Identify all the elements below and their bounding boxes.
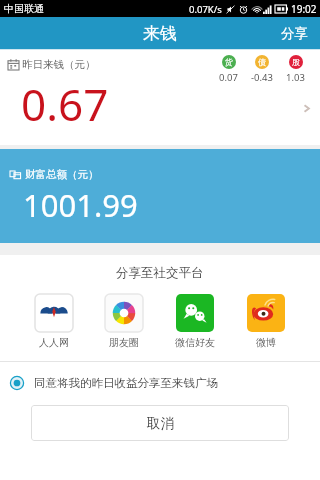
staticText: 19:02 bbox=[291, 2, 317, 16]
staticText: 0.07K/s bbox=[189, 3, 222, 16]
staticText: 股 bbox=[292, 57, 300, 67]
staticText: -0.43 bbox=[251, 71, 273, 84]
button[interactable]: 分享 bbox=[269, 18, 320, 49]
staticText: 1.03 bbox=[286, 71, 305, 84]
staticText: 来钱 bbox=[143, 23, 177, 44]
button[interactable]: 朋友圈 bbox=[102, 293, 146, 350]
staticText: 中国联通 bbox=[4, 2, 44, 15]
staticText: 分享 bbox=[281, 25, 308, 42]
staticText: 货 bbox=[225, 57, 233, 67]
staticText: 微博 bbox=[256, 336, 276, 349]
button[interactable]: 微博 bbox=[244, 293, 288, 350]
staticText: 人人网 bbox=[39, 336, 69, 349]
staticText: 分享至社交平台 bbox=[116, 265, 204, 281]
staticText: 微信好友 bbox=[175, 336, 215, 349]
staticText: 0.07 bbox=[219, 71, 238, 84]
staticText: 朋友圈 bbox=[109, 336, 139, 349]
staticText: 债 bbox=[258, 57, 266, 67]
button[interactable]: 微信好友 bbox=[172, 293, 218, 350]
staticText: 财富总额（元） bbox=[25, 168, 99, 181]
button[interactable]: 查看详情 bbox=[298, 100, 314, 116]
staticText: 同意将我的昨日收益分享至来钱广场 bbox=[34, 376, 218, 390]
staticText: 昨日来钱（元） bbox=[22, 58, 96, 71]
staticText: 0.67 bbox=[21, 74, 109, 134]
staticText: 1001.99 bbox=[23, 184, 138, 226]
button[interactable]: 昨日来钱（元） bbox=[0, 50, 320, 145]
button[interactable]: 同意将我的昨日收益分享至来钱广场 bbox=[0, 374, 320, 392]
staticText: 取消 bbox=[147, 415, 174, 432]
button[interactable]: 人人网 bbox=[32, 293, 76, 350]
button[interactable]: 取消 bbox=[31, 405, 289, 441]
button[interactable]: 财富总额（元） bbox=[0, 149, 320, 243]
